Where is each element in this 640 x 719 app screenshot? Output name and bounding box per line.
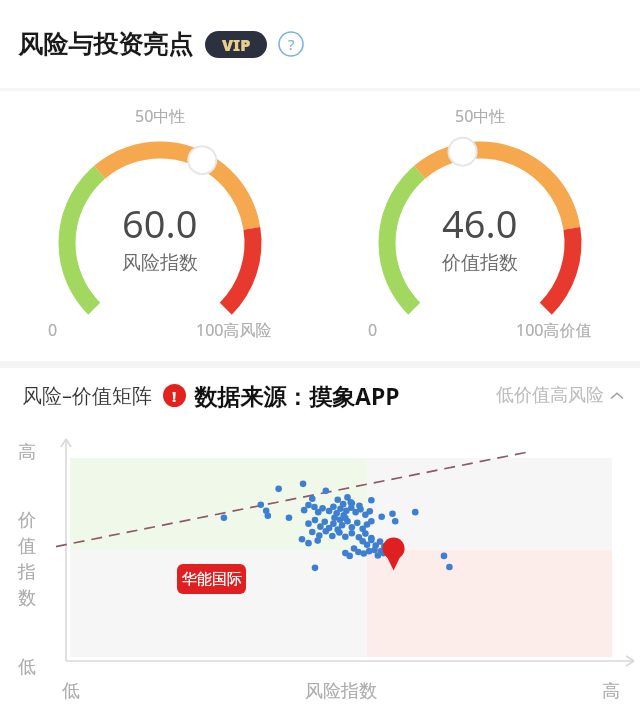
staticText: 价 值 指 数 (18, 509, 36, 610)
button[interactable]: 低价值高风险 (496, 384, 624, 407)
staticText: 风险–价值矩阵 (22, 382, 152, 409)
staticText: 0 (368, 319, 378, 341)
staticText: 风险与投资亮点 (18, 29, 193, 60)
staticText: 风险指数 (122, 251, 198, 275)
staticText: 华能国际 (182, 570, 242, 589)
button[interactable]: VIP (205, 31, 267, 58)
staticText: 50中性 (135, 105, 186, 127)
staticText: 46.0 (442, 197, 518, 249)
staticText: 风险指数 (305, 680, 377, 703)
staticText: 50中性 (455, 105, 506, 127)
button[interactable]: Help (278, 31, 304, 57)
staticText: 高 (602, 680, 620, 703)
staticText: 60.0 (122, 197, 198, 249)
staticText: ! (172, 386, 177, 406)
staticText: 低价值高风险 (496, 384, 604, 407)
staticText: 价值指数 (442, 251, 518, 275)
staticText: 100高价值 (516, 319, 592, 341)
staticText: 高 (18, 441, 36, 464)
staticText: 0 (48, 319, 58, 341)
staticText: 低 (62, 680, 80, 703)
button[interactable]: 华能国际 (177, 564, 246, 594)
staticText: ? (288, 34, 295, 54)
staticText: 数据来源：摸象APP (194, 380, 400, 411)
staticText: 100高风险 (196, 319, 272, 341)
staticText: 低 (18, 656, 36, 679)
staticText: VIP (222, 34, 251, 56)
